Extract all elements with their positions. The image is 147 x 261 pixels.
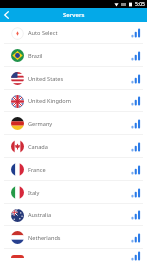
- staticText: 5:05: [135, 1, 145, 8]
- button[interactable]: [0, 249, 147, 261]
- staticText: United Kingdom: [28, 97, 71, 105]
- button[interactable]: France: [0, 158, 147, 181]
- button[interactable]: Italy: [0, 181, 147, 204]
- staticText: France: [28, 166, 46, 174]
- staticText: United States: [28, 75, 64, 83]
- staticText: Auto Select: [28, 29, 58, 37]
- button[interactable]: United Kingdom: [0, 90, 147, 112]
- button[interactable]: Auto Select: [0, 22, 147, 44]
- staticText: Netherlands: [28, 234, 61, 242]
- staticText: Germany: [28, 120, 53, 128]
- staticText: Australia: [28, 211, 52, 219]
- button[interactable]: Netherlands: [0, 226, 147, 249]
- staticText: Servers: [63, 11, 85, 19]
- button[interactable]: United States: [0, 67, 147, 90]
- button[interactable]: Canada: [0, 135, 147, 158]
- staticText: Canada: [28, 143, 48, 151]
- staticText: Brazil: [28, 52, 43, 60]
- button[interactable]: Brazil: [0, 44, 147, 67]
- button[interactable]: Germany: [0, 112, 147, 135]
- button[interactable]: Australia: [0, 204, 147, 226]
- button[interactable]: [0, 8, 15, 22]
- staticText: Italy: [28, 189, 40, 197]
